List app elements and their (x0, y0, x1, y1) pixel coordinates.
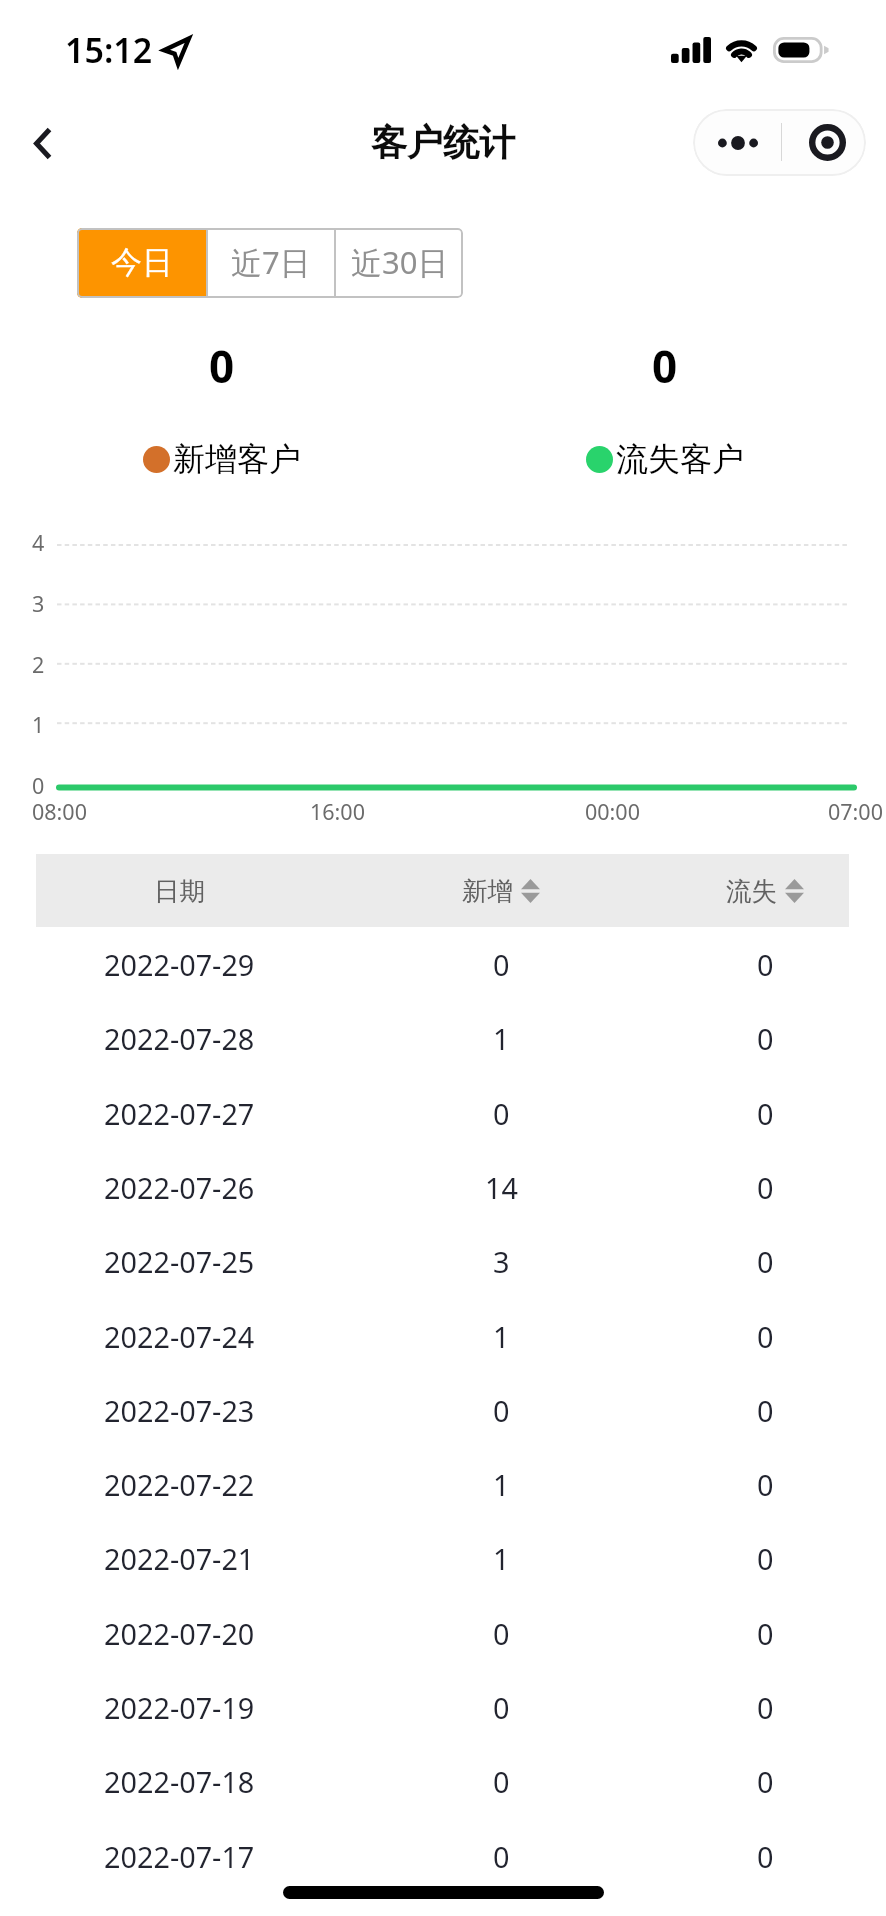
button[interactable]: 近30日 (336, 228, 463, 298)
button[interactable]: 流失 (635, 854, 886, 927)
staticText: 2022-07-29 (104, 945, 255, 984)
staticText: 16:00 (310, 797, 365, 826)
staticText: 今日 (111, 243, 173, 282)
staticText: 0 (493, 1688, 510, 1727)
staticText: 3 (32, 589, 45, 617)
staticText: 00:00 (585, 797, 640, 826)
staticText: 近7日 (231, 241, 311, 283)
button[interactable]: 新增 (371, 854, 631, 927)
button[interactable]: 2022-07-17 (0, 1819, 886, 1893)
staticText: 2022-07-20 (104, 1614, 255, 1653)
staticText: 2022-07-22 (104, 1465, 255, 1504)
staticText: 0 (757, 1762, 774, 1801)
staticText: 客户统计 (371, 120, 515, 165)
button[interactable]: Back (7, 99, 79, 187)
staticText: 0 (757, 945, 774, 984)
button[interactable]: 2022-07-18 (0, 1744, 886, 1818)
button[interactable]: 2022-07-26 (0, 1150, 886, 1224)
staticText: 14 (485, 1168, 518, 1207)
staticText: 0 (757, 1317, 774, 1356)
staticText: 流失客户 (616, 439, 744, 479)
button[interactable]: 2022-07-20 (0, 1596, 886, 1670)
staticText: 1 (32, 710, 45, 738)
staticText: 0 (757, 1019, 774, 1058)
staticText: 流失 (726, 875, 777, 907)
button[interactable]: 2022-07-28 (0, 1001, 886, 1075)
staticText: 0 (757, 1391, 774, 1430)
staticText: 新增 (462, 875, 513, 907)
button[interactable]: More options (693, 109, 782, 176)
staticText: 2022-07-18 (104, 1762, 255, 1801)
staticText: 0 (493, 945, 510, 984)
button[interactable]: 2022-07-23 (0, 1373, 886, 1447)
staticText: 0 (757, 1614, 774, 1653)
staticText: 0 (757, 1168, 774, 1207)
staticText: 2022-07-28 (104, 1019, 255, 1058)
staticText: 1 (493, 1317, 510, 1356)
staticText: 0 (493, 1837, 510, 1876)
staticText: 08:00 (32, 797, 87, 826)
staticText: 新增客户 (173, 439, 301, 479)
button[interactable]: 2022-07-27 (0, 1076, 886, 1150)
staticText: 0 (32, 771, 45, 799)
staticText: 0 (757, 1688, 774, 1727)
staticText: 2022-07-19 (104, 1688, 255, 1727)
staticText: 4 (32, 528, 45, 556)
staticText: 2022-07-26 (104, 1168, 255, 1207)
staticText: 日期 (154, 875, 205, 907)
staticText: 0 (209, 336, 235, 396)
staticText: 2022-07-27 (104, 1094, 255, 1133)
button[interactable]: Close mini program (782, 109, 866, 176)
staticText: 15:12 (65, 27, 153, 73)
staticText: 0 (757, 1094, 774, 1133)
staticText: 0 (757, 1837, 774, 1876)
staticText: 2022-07-24 (104, 1317, 255, 1356)
staticText: 1 (493, 1539, 510, 1578)
button[interactable]: 2022-07-24 (0, 1299, 886, 1373)
staticText: 2022-07-23 (104, 1391, 255, 1430)
button[interactable]: 2022-07-22 (0, 1447, 886, 1521)
staticText: 0 (652, 336, 678, 396)
staticText: 0 (493, 1614, 510, 1653)
button[interactable]: 2022-07-29 (0, 927, 886, 1001)
staticText: 2022-07-17 (104, 1837, 255, 1876)
staticText: 0 (757, 1242, 774, 1281)
staticText: 近30日 (351, 241, 449, 283)
staticText: 2022-07-21 (104, 1539, 255, 1578)
staticText: 07:00 (828, 797, 883, 826)
staticText: 0 (493, 1094, 510, 1133)
staticText: 0 (493, 1762, 510, 1801)
staticText: 3 (493, 1242, 510, 1281)
staticText: 0 (757, 1539, 774, 1578)
staticText: 2022-07-25 (104, 1242, 255, 1281)
staticText: 0 (493, 1391, 510, 1430)
staticText: 2 (32, 650, 45, 678)
staticText: 1 (493, 1465, 510, 1504)
button[interactable]: 近7日 (208, 228, 334, 298)
button[interactable]: 2022-07-25 (0, 1224, 886, 1298)
button[interactable]: 今日 (77, 228, 206, 298)
button[interactable]: 2022-07-21 (0, 1521, 886, 1595)
staticText: 1 (493, 1019, 510, 1058)
button[interactable]: 2022-07-19 (0, 1670, 886, 1744)
staticText: 0 (757, 1465, 774, 1504)
